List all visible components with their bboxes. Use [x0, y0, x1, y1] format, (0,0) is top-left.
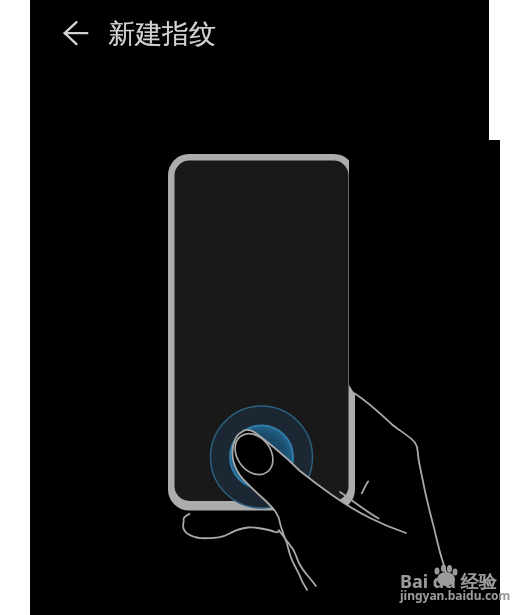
button[interactable]: Back [43, 9, 91, 57]
staticText: 新建指纹 [108, 17, 216, 51]
staticText: jingyan.baidu.com [400, 587, 511, 603]
staticText: Bai du 经验 [400, 569, 497, 594]
